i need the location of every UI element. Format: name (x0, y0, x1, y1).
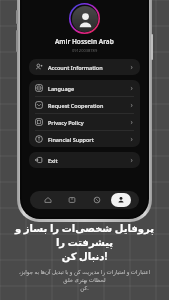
button[interactable]: Financial Support (29, 131, 140, 147)
staticText: Language (48, 85, 75, 92)
staticText: Account Information (48, 64, 103, 71)
button[interactable]: Exit (29, 152, 140, 168)
button[interactable]: Profile (111, 193, 131, 207)
button[interactable]: Rewards (87, 193, 107, 207)
staticText: پروفایل شخصی‌ات را بساز و پیشرفتت را دنب… (10, 221, 159, 263)
button[interactable]: Account Information (29, 59, 140, 75)
staticText: اعتبارات و امتیازات را مدیریت کن و با تب… (10, 268, 159, 292)
staticText: Privacy Policy (48, 119, 84, 126)
staticText: Request Cooperation (48, 102, 104, 109)
button[interactable]: Home (38, 193, 58, 207)
staticText: Exit (48, 157, 58, 164)
staticText: 09120038789 (72, 48, 98, 53)
button[interactable]: Wallet (62, 193, 82, 207)
button[interactable]: Request Cooperation (29, 97, 140, 113)
button[interactable]: Privacy Policy (29, 114, 140, 130)
staticText: Financial Support (48, 136, 94, 143)
button[interactable]: Language (29, 80, 140, 96)
staticText: Amir Hossein Arab (55, 37, 114, 46)
